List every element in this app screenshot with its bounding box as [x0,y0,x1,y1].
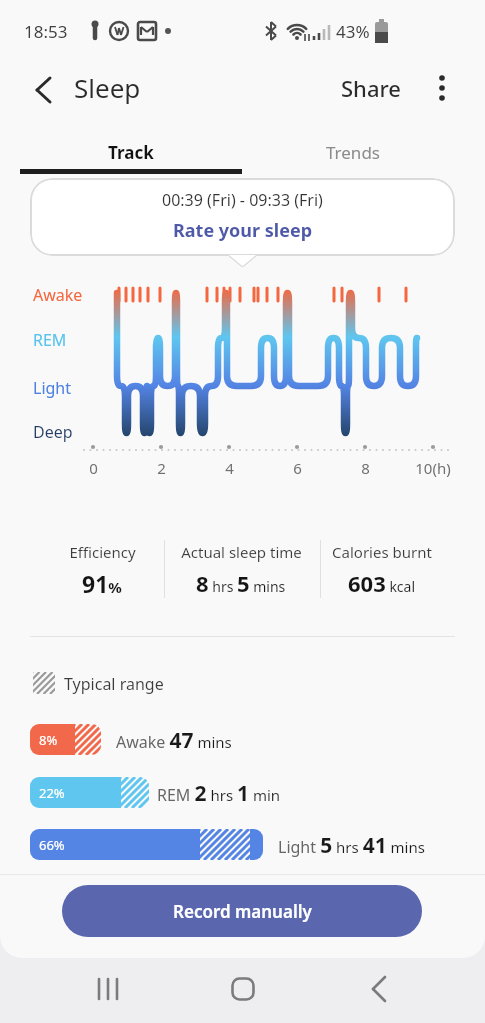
button[interactable] [86,967,130,1011]
staticText: Track [108,141,154,164]
staticText: 91% [82,568,122,599]
button[interactable] [24,70,64,110]
staticText: REM 2 hrs 1 min [157,779,281,808]
staticText: Light 5 hrs 41 mins [278,831,425,860]
staticText: 8 [361,458,370,478]
staticText: Deep [33,421,73,443]
staticText: Record manually [173,900,312,923]
staticText: 4 [225,458,234,478]
staticText: Efficiency [69,542,136,562]
staticText: 8 hrs 5 mins [196,568,286,598]
staticText: Awake [33,284,83,306]
staticText: Calories burnt [332,542,432,562]
staticText: Typical range [64,673,164,695]
staticText: 18:53 [24,20,68,43]
staticText: 10(h) [415,458,451,478]
staticText: 00:39 (Fri) - 09:33 (Fri) [162,189,323,211]
button[interactable]: Share [341,68,401,108]
staticText: Trends [326,141,380,164]
staticText: 0 [89,458,98,478]
staticText: 603 kcal [348,568,416,598]
staticText: 43% [336,20,370,43]
staticText: Actual sleep time [181,542,302,562]
button[interactable]: Record manually [62,885,422,937]
staticText: 8% [39,731,58,749]
button[interactable] [424,68,460,108]
staticText: Light [33,377,72,399]
button[interactable]: 00:39 (Fri) - 09:33 (Fri) [30,178,455,256]
button[interactable] [358,967,402,1011]
staticText: 22% [39,784,65,802]
staticText: REM [33,329,67,351]
button[interactable]: Track [20,131,242,173]
button[interactable]: Trends [242,131,464,173]
staticText: 6 [293,458,302,478]
staticText: Share [341,73,401,103]
staticText: Awake 47 mins [116,726,232,755]
staticText: 66% [39,836,65,854]
staticText: Rate your sleep [173,218,313,243]
staticText: Sleep [74,70,141,105]
staticText: 2 [157,458,166,478]
button[interactable] [221,967,265,1011]
